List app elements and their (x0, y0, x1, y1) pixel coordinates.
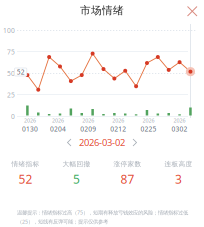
staticText: 2026 (142, 117, 154, 124)
staticText: 0225 (140, 125, 156, 133)
staticText: 情绪指标 (11, 160, 39, 168)
staticText: 0 (11, 112, 15, 121)
staticText: 0130 (22, 125, 38, 133)
staticText: 市场情绪 (80, 4, 124, 17)
staticText: 0212 (110, 125, 126, 133)
staticText: 0204 (50, 125, 66, 133)
staticText: 连板高度 (164, 160, 192, 168)
staticText: 2026-03-02 (79, 136, 125, 149)
staticText: 50 (7, 69, 15, 78)
staticText: 2026 (52, 117, 64, 124)
staticText: 2026 (24, 117, 36, 124)
staticText: 涨停家数 (113, 160, 141, 168)
button[interactable]: Next day (129, 135, 140, 150)
button[interactable]: Previous day (63, 135, 75, 150)
staticText: 2026 (82, 117, 94, 124)
staticText: 大幅回撤 (62, 160, 90, 168)
staticText: 87 (120, 171, 134, 187)
button[interactable]: Close (183, 2, 201, 20)
staticText: 3 (175, 171, 182, 187)
staticText: 75 (7, 47, 15, 56)
staticText: 2026 (173, 117, 185, 124)
staticText: 52 (18, 171, 32, 187)
staticText: 5 (73, 171, 80, 187)
staticText: 温馨提示：情绪指标过高（75），短期有释放亏钱效应的风险；情绪指标过低 (17, 209, 188, 216)
staticText: 52 (17, 68, 25, 76)
staticText: 25 (7, 90, 15, 99)
staticText: 0209 (80, 125, 96, 133)
staticText: （25），短线有反弹可能；提示仅供参考 (17, 218, 108, 225)
staticText: 0302 (171, 125, 187, 133)
staticText: 100 (3, 26, 15, 35)
staticText: 2026 (112, 117, 124, 124)
